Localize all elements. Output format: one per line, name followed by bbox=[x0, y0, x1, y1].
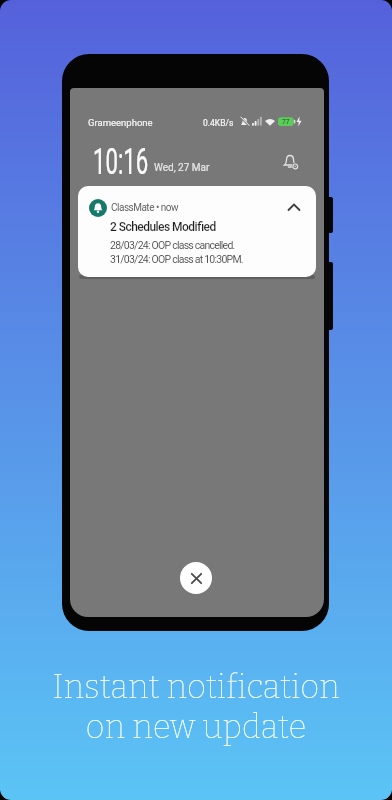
staticText: 2 Schedules Modified bbox=[110, 220, 216, 234]
staticText: 31/03/24: OOP class at 10:30PM. bbox=[110, 253, 243, 265]
staticText: Grameenphone bbox=[88, 117, 153, 128]
staticText: Instant notification bbox=[52, 667, 340, 707]
button[interactable] bbox=[283, 154, 299, 170]
staticText: 10:16 bbox=[93, 141, 148, 183]
staticText: ClassMate • now bbox=[111, 202, 179, 214]
staticText: 0.4KB/s bbox=[203, 118, 234, 128]
button[interactable] bbox=[180, 562, 212, 594]
staticText: Wed, 27 Mar bbox=[154, 162, 210, 174]
staticText: on new update bbox=[85, 707, 307, 747]
staticText: 77 bbox=[282, 118, 290, 126]
button[interactable] bbox=[284, 198, 304, 216]
button[interactable]: ClassMate • now bbox=[78, 186, 316, 277]
staticText: 28/03/24: OOP class cancelled. bbox=[110, 239, 235, 251]
